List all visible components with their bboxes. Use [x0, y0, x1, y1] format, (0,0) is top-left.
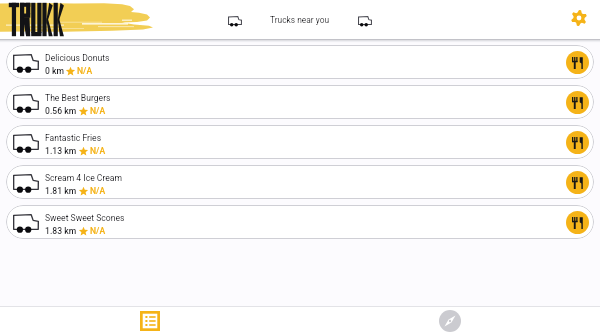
- button[interactable]: Trucks: [222, 7, 248, 33]
- staticText: 1.81 km: [45, 186, 77, 196]
- button[interactable]: Settings: [566, 5, 592, 31]
- staticText: Fantastic Fries: [45, 133, 102, 143]
- staticText: N/A: [77, 66, 93, 76]
- button[interactable]: Sweet Sweet Scones: [6, 205, 594, 239]
- button[interactable]: Trucks: [352, 7, 378, 33]
- button[interactable]: Food menu: [566, 51, 589, 74]
- button[interactable]: Food menu: [566, 91, 589, 114]
- button[interactable]: Scream 4 Ice Cream: [6, 165, 594, 199]
- button[interactable]: Explore map: [300, 306, 600, 335]
- staticText: Delicious Donuts: [45, 53, 110, 63]
- staticText: Trucks near you: [270, 15, 330, 25]
- button[interactable]: Food menu: [566, 171, 589, 194]
- staticText: The Best Burgers: [45, 93, 111, 103]
- button[interactable]: The Best Burgers: [6, 85, 594, 119]
- staticText: N/A: [90, 146, 106, 156]
- button[interactable]: Delicious Donuts: [6, 45, 594, 79]
- staticText: 1.83 km: [45, 226, 77, 236]
- button[interactable]: Food menu: [566, 131, 589, 154]
- staticText: Scream 4 Ice Cream: [45, 173, 123, 183]
- staticText: Sweet Sweet Scones: [45, 213, 125, 223]
- staticText: N/A: [90, 226, 106, 236]
- staticText: N/A: [90, 106, 106, 116]
- button[interactable]: List: [0, 306, 300, 335]
- staticText: 1.13 km: [45, 146, 77, 156]
- button[interactable]: Food menu: [566, 211, 589, 234]
- staticText: N/A: [90, 186, 106, 196]
- button[interactable]: Fantastic Fries: [6, 125, 594, 159]
- staticText: 0 km: [45, 66, 64, 76]
- staticText: 0.56 km: [45, 106, 77, 116]
